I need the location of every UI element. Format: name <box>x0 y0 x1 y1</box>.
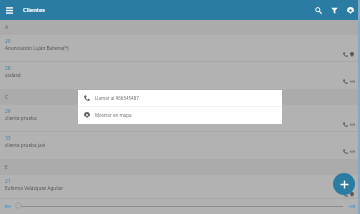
button[interactable]: Next page <box>346 200 358 212</box>
button[interactable]: Filter <box>326 0 342 20</box>
staticText: Mostrar en mapa <box>95 112 132 118</box>
button[interactable]: Show on map <box>349 50 355 58</box>
staticText: 20 <box>5 38 11 45</box>
button[interactable]: 33 <box>0 132 360 159</box>
button[interactable]: Navigation menu <box>0 1 18 19</box>
button[interactable]: Call <box>342 190 348 198</box>
staticText: cliente prueba javi <box>5 142 46 148</box>
button[interactable]: Send email <box>349 120 355 128</box>
staticText: cliente prueba <box>5 115 37 121</box>
button[interactable]: Add client <box>333 173 355 195</box>
button[interactable]: Call <box>342 50 348 58</box>
staticText: Llamar al 966545487 <box>95 95 139 101</box>
button[interactable]: Show on map <box>349 190 355 198</box>
staticText: E <box>5 164 8 171</box>
button[interactable]: Mostrar en mapa <box>78 107 282 123</box>
button[interactable]: Call <box>342 77 348 85</box>
staticText: 28 <box>5 65 11 72</box>
staticText: C <box>5 94 9 101</box>
button[interactable]: 21 <box>0 175 360 199</box>
staticText: 21 <box>5 178 11 185</box>
button[interactable]: 29 <box>0 105 360 132</box>
button[interactable]: Send email <box>349 147 355 155</box>
button[interactable]: Llamar al 966545487 <box>78 90 282 106</box>
staticText: 33 <box>5 135 11 142</box>
button[interactable]: Send email <box>349 77 355 85</box>
button[interactable]: Scroll position <box>14 201 22 209</box>
staticText: Eufemia Velázquez Aguilar <box>5 185 64 191</box>
button[interactable]: Previous page <box>1 200 13 212</box>
button[interactable]: Call <box>342 147 348 155</box>
staticText: Clientes <box>23 6 46 14</box>
staticText: Anunciación Luján Bahena(*) <box>5 45 69 51</box>
button[interactable]: Call <box>342 120 348 128</box>
button[interactable]: 20 <box>0 35 360 62</box>
button[interactable]: Search <box>310 0 326 20</box>
staticText: A <box>5 24 9 31</box>
staticText: 29 <box>5 108 11 115</box>
button[interactable]: 28 <box>0 62 360 89</box>
button[interactable]: Show on map <box>342 0 358 20</box>
staticText: asdasd <box>5 72 21 78</box>
